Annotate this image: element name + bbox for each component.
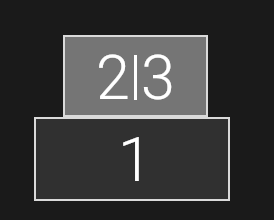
button[interactable]: 2 (63, 35, 208, 117)
button[interactable]: 1 (34, 117, 230, 201)
staticText: 2 (96, 42, 130, 113)
staticText: 1 (118, 124, 152, 195)
staticText: 3 (141, 42, 175, 113)
